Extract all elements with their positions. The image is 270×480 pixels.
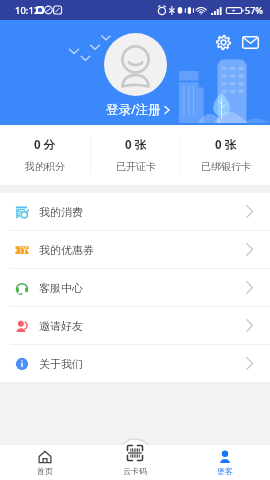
button[interactable]: 0 张 [181,125,270,185]
button[interactable]: 登录/注册 [103,101,167,118]
staticText: 我的消费 [39,205,83,219]
staticText: 我的优惠券 [39,243,94,257]
button[interactable]: Messages [238,30,263,55]
staticText: 10:12 [15,4,40,17]
button[interactable]: 堡客 [180,445,270,480]
staticText: 已绑银行卡 [201,160,251,173]
button[interactable]: 我的消费 [0,193,270,230]
staticText: 关于我们 [39,357,83,371]
staticText: 我的积分 [25,160,65,173]
staticText: 堡客 [217,466,233,476]
staticText: 57% [245,4,263,16]
button[interactable]: 云卡码 [90,445,180,480]
button[interactable]: 关于我们 [0,345,270,382]
staticText: 邀请好友 [39,319,83,333]
button[interactable]: 客服中心 [0,269,270,306]
button[interactable]: 我的优惠券 [0,231,270,268]
staticText: 已开证卡 [116,160,156,173]
staticText: 0 张 [215,137,237,153]
button[interactable]: 首页 [0,445,90,480]
button[interactable]: 邀请好友 [0,307,270,344]
staticText: 云卡码 [123,466,147,476]
staticText: 0 分 [34,137,56,153]
button[interactable]: 0 分 [0,125,90,185]
button[interactable]: 0 张 [91,125,180,185]
staticText: 客服中心 [39,281,83,295]
button[interactable]: Avatar [104,33,167,96]
staticText: 登录/注册 [106,101,161,118]
button[interactable]: Settings [211,30,236,55]
staticText: 0 张 [125,137,147,153]
staticText: 首页 [37,466,53,476]
